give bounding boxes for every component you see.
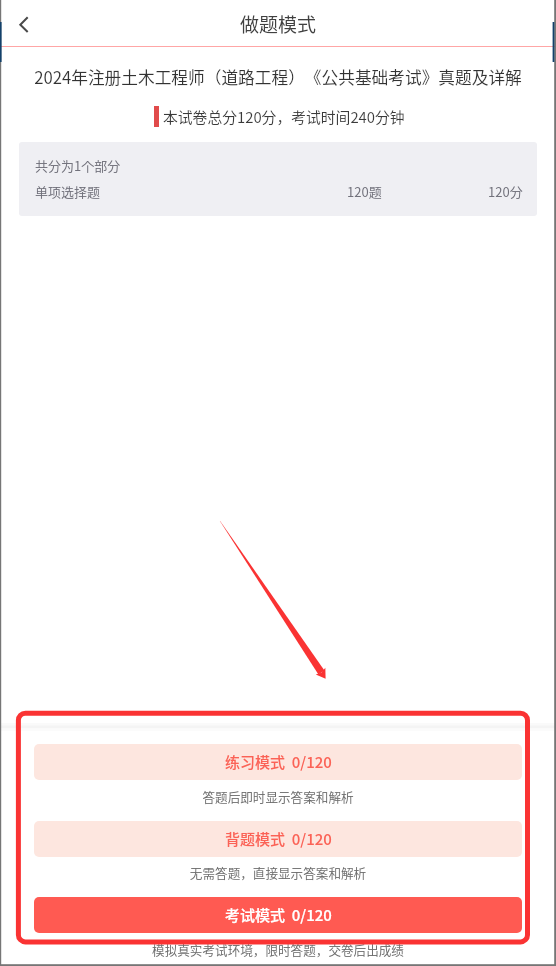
button[interactable]: 考试模式 0/120 bbox=[34, 897, 522, 933]
staticText: 120题 bbox=[347, 182, 382, 201]
button[interactable]: 背题模式 0/120 bbox=[34, 821, 522, 857]
staticText: 本试卷总分120分，考试时间240分钟 bbox=[163, 106, 405, 127]
staticText: 120分 bbox=[488, 182, 523, 201]
staticText: 共分为1个部分 bbox=[35, 156, 121, 175]
staticText: 答题后即时显示答案和解析 bbox=[0, 787, 556, 805]
button[interactable]: Back bbox=[3, 4, 43, 44]
staticText: 单项选择题 bbox=[35, 182, 101, 201]
button[interactable]: 练习模式 0/120 bbox=[34, 744, 522, 780]
staticText: 做题模式 bbox=[240, 10, 317, 38]
staticText: 练习模式 0/120 bbox=[225, 751, 332, 773]
staticText: 2024年注册土木工程师（道路工程）《公共基础考试》真题及详解 bbox=[14, 65, 542, 89]
staticText: 考试模式 0/120 bbox=[225, 904, 332, 926]
staticText: 背题模式 0/120 bbox=[225, 828, 332, 850]
staticText: 无需答题，直接显示答案和解析 bbox=[0, 863, 556, 881]
staticText: 模拟真实考试环境，限时答题，交卷后出成绩 bbox=[0, 940, 556, 958]
